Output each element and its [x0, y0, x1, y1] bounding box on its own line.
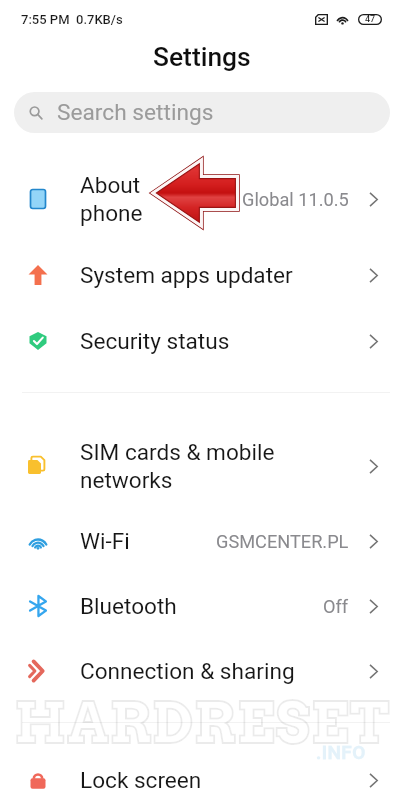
staticText: 7:55 PM 0.7KB/s [21, 12, 123, 27]
button[interactable]: Wi-Fi [0, 509, 404, 573]
button[interactable]: Lock screen [0, 748, 404, 800]
button[interactable]: Security status [0, 309, 404, 373]
other: Pointer arrow [0, 0, 404, 800]
staticText: Global 11.0.5 [242, 189, 349, 210]
staticText: Lock screen [80, 767, 202, 793]
staticText: About phone [80, 172, 170, 227]
button[interactable]: About phone [0, 167, 404, 231]
button[interactable]: Bluetooth [0, 574, 404, 638]
staticText: Wi-Fi [80, 528, 130, 554]
staticText: Settings [153, 42, 251, 73]
button[interactable]: Search settings [14, 92, 390, 133]
staticText: .INFO [316, 741, 366, 763]
button[interactable]: Connection & sharing [0, 639, 404, 703]
staticText: SIM cards & mobile networks [80, 439, 280, 494]
staticText: HARDRESET [0, 688, 404, 757]
staticText: GSMCENTER.PL [216, 531, 349, 552]
staticText: 47 [365, 14, 376, 25]
staticText: System apps updater [80, 262, 293, 288]
button[interactable]: SIM cards & mobile networks [0, 434, 404, 498]
staticText: Connection & sharing [80, 658, 295, 684]
staticText: Off [323, 596, 349, 617]
button[interactable]: System apps updater [0, 243, 404, 307]
staticText: Search settings [57, 99, 214, 126]
staticText: Bluetooth [80, 593, 177, 619]
staticText: Security status [80, 328, 230, 354]
